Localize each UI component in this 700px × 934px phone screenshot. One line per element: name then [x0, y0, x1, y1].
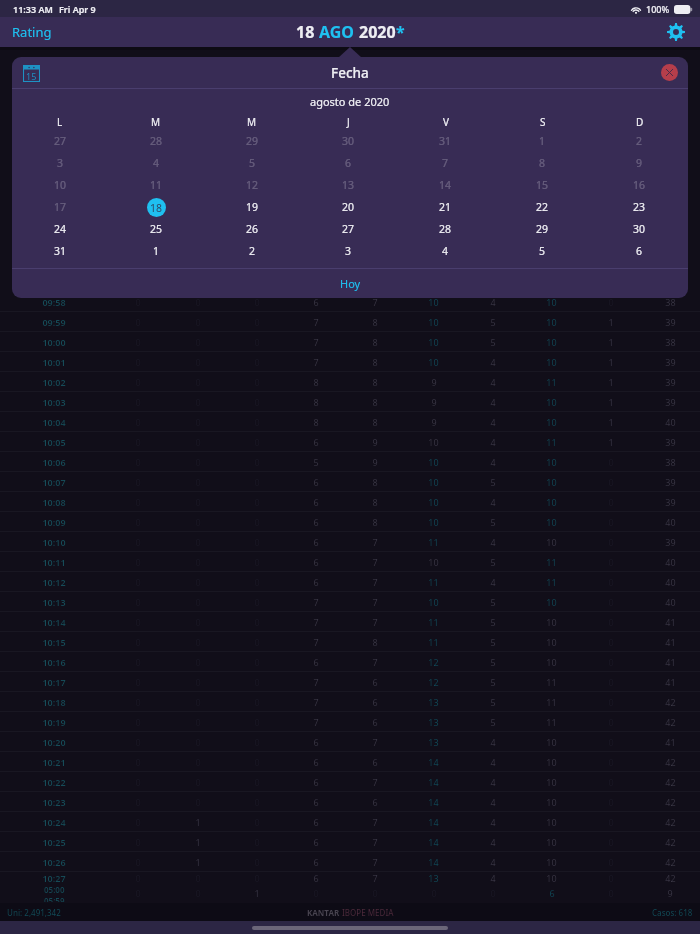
button[interactable]: 10:12	[0, 572, 700, 591]
button[interactable]: Hoy	[12, 269, 688, 298]
button[interactable]: 09:58	[0, 292, 700, 311]
button[interactable]: 5	[494, 240, 591, 262]
button[interactable]: 1	[494, 130, 591, 152]
button[interactable]: 27	[12, 130, 108, 152]
button[interactable]: 26	[204, 218, 300, 240]
button[interactable]: 18	[108, 196, 204, 218]
button[interactable]: 10:04	[0, 412, 700, 431]
button[interactable]: 6	[300, 152, 397, 174]
button[interactable]: 09:59	[0, 312, 700, 331]
button[interactable]: 3	[12, 152, 108, 174]
button[interactable]: 13	[300, 174, 397, 196]
button[interactable]: 10:19	[0, 712, 700, 731]
button[interactable]: 31	[12, 240, 108, 262]
button[interactable]: 1	[108, 240, 204, 262]
button[interactable]: 10	[12, 174, 108, 196]
button[interactable]: 10:20	[0, 732, 700, 751]
button[interactable]: 11	[108, 174, 204, 196]
button[interactable]: 10:25	[0, 832, 700, 851]
button[interactable]: 17	[12, 196, 108, 218]
button[interactable]: 10:00	[0, 332, 700, 351]
button[interactable]: Rating	[0, 17, 64, 47]
button[interactable]: 22	[494, 196, 591, 218]
staticText: 7	[372, 616, 378, 628]
button[interactable]: 15	[494, 174, 591, 196]
button[interactable]: 6	[591, 240, 688, 262]
button[interactable]: 10:11	[0, 552, 700, 571]
button[interactable]: 10:21	[0, 752, 700, 771]
staticText: 10:26	[42, 856, 66, 868]
staticText: 3	[57, 156, 64, 170]
button[interactable]: 10:17	[0, 672, 700, 691]
button[interactable]: 12	[204, 174, 300, 196]
button[interactable]: 2	[204, 240, 300, 262]
button[interactable]: 10:26	[0, 852, 700, 871]
staticText: AGO	[319, 21, 359, 43]
button[interactable]: 3	[300, 240, 397, 262]
staticText: 10:24	[42, 816, 66, 828]
button[interactable]: 10:18	[0, 692, 700, 711]
button[interactable]: 8	[494, 152, 591, 174]
button[interactable]: 10:23	[0, 792, 700, 811]
button[interactable]: 20	[300, 196, 397, 218]
button[interactable]: 9	[591, 152, 688, 174]
staticText: 13	[428, 872, 439, 884]
staticText: 28	[150, 134, 163, 148]
button[interactable]: 30	[300, 130, 397, 152]
button[interactable]: 4	[108, 152, 204, 174]
button[interactable]: 31	[397, 130, 494, 152]
staticText: 4	[490, 496, 496, 508]
button[interactable]: 28	[397, 218, 494, 240]
button[interactable]: 23	[591, 196, 688, 218]
button[interactable]: 10:09	[0, 512, 700, 531]
button[interactable]: 7	[397, 152, 494, 174]
staticText: 42	[665, 836, 676, 848]
button[interactable]: 27	[300, 218, 397, 240]
staticText: 7	[372, 776, 378, 788]
button[interactable]: Ajustes	[652, 18, 700, 46]
button[interactable]: 19	[204, 196, 300, 218]
button[interactable]: 10:07	[0, 472, 700, 491]
staticText: L	[57, 115, 63, 129]
button[interactable]: 2	[591, 130, 688, 152]
button[interactable]: Cerrar	[661, 64, 678, 81]
button[interactable]: 10:06	[0, 452, 700, 471]
button[interactable]: 4	[397, 240, 494, 262]
button[interactable]: Calendario	[12, 57, 51, 88]
button[interactable]: 10:03	[0, 392, 700, 411]
button[interactable]: 10:22	[0, 772, 700, 791]
staticText: Casos: 618	[652, 907, 693, 918]
button[interactable]: 10:02	[0, 372, 700, 391]
button[interactable]: 10:01	[0, 352, 700, 371]
button[interactable]: 24	[12, 218, 108, 240]
staticText: 10	[546, 856, 557, 868]
button[interactable]: 10:08	[0, 492, 700, 511]
button[interactable]: 10:27	[0, 872, 700, 884]
button[interactable]: 18	[286, 17, 415, 47]
button[interactable]: 29	[494, 218, 591, 240]
button[interactable]: 10:05	[0, 432, 700, 451]
button[interactable]: 10:10	[0, 532, 700, 551]
button[interactable]: 10:15	[0, 632, 700, 651]
button[interactable]: 21	[397, 196, 494, 218]
button[interactable]: 10:14	[0, 612, 700, 631]
button[interactable]: 5	[204, 152, 300, 174]
staticText: 5	[490, 696, 496, 708]
button[interactable]: 25	[108, 218, 204, 240]
button[interactable]: 29	[204, 130, 300, 152]
staticText: 9	[372, 436, 378, 448]
button[interactable]: 10:16	[0, 652, 700, 671]
button[interactable]: 10:13	[0, 592, 700, 611]
button[interactable]: 28	[108, 130, 204, 152]
button[interactable]: 30	[591, 218, 688, 240]
button[interactable]: 14	[397, 174, 494, 196]
staticText: 10	[428, 336, 439, 348]
button[interactable]: 10:24	[0, 812, 700, 831]
button[interactable]: 16	[591, 174, 688, 196]
